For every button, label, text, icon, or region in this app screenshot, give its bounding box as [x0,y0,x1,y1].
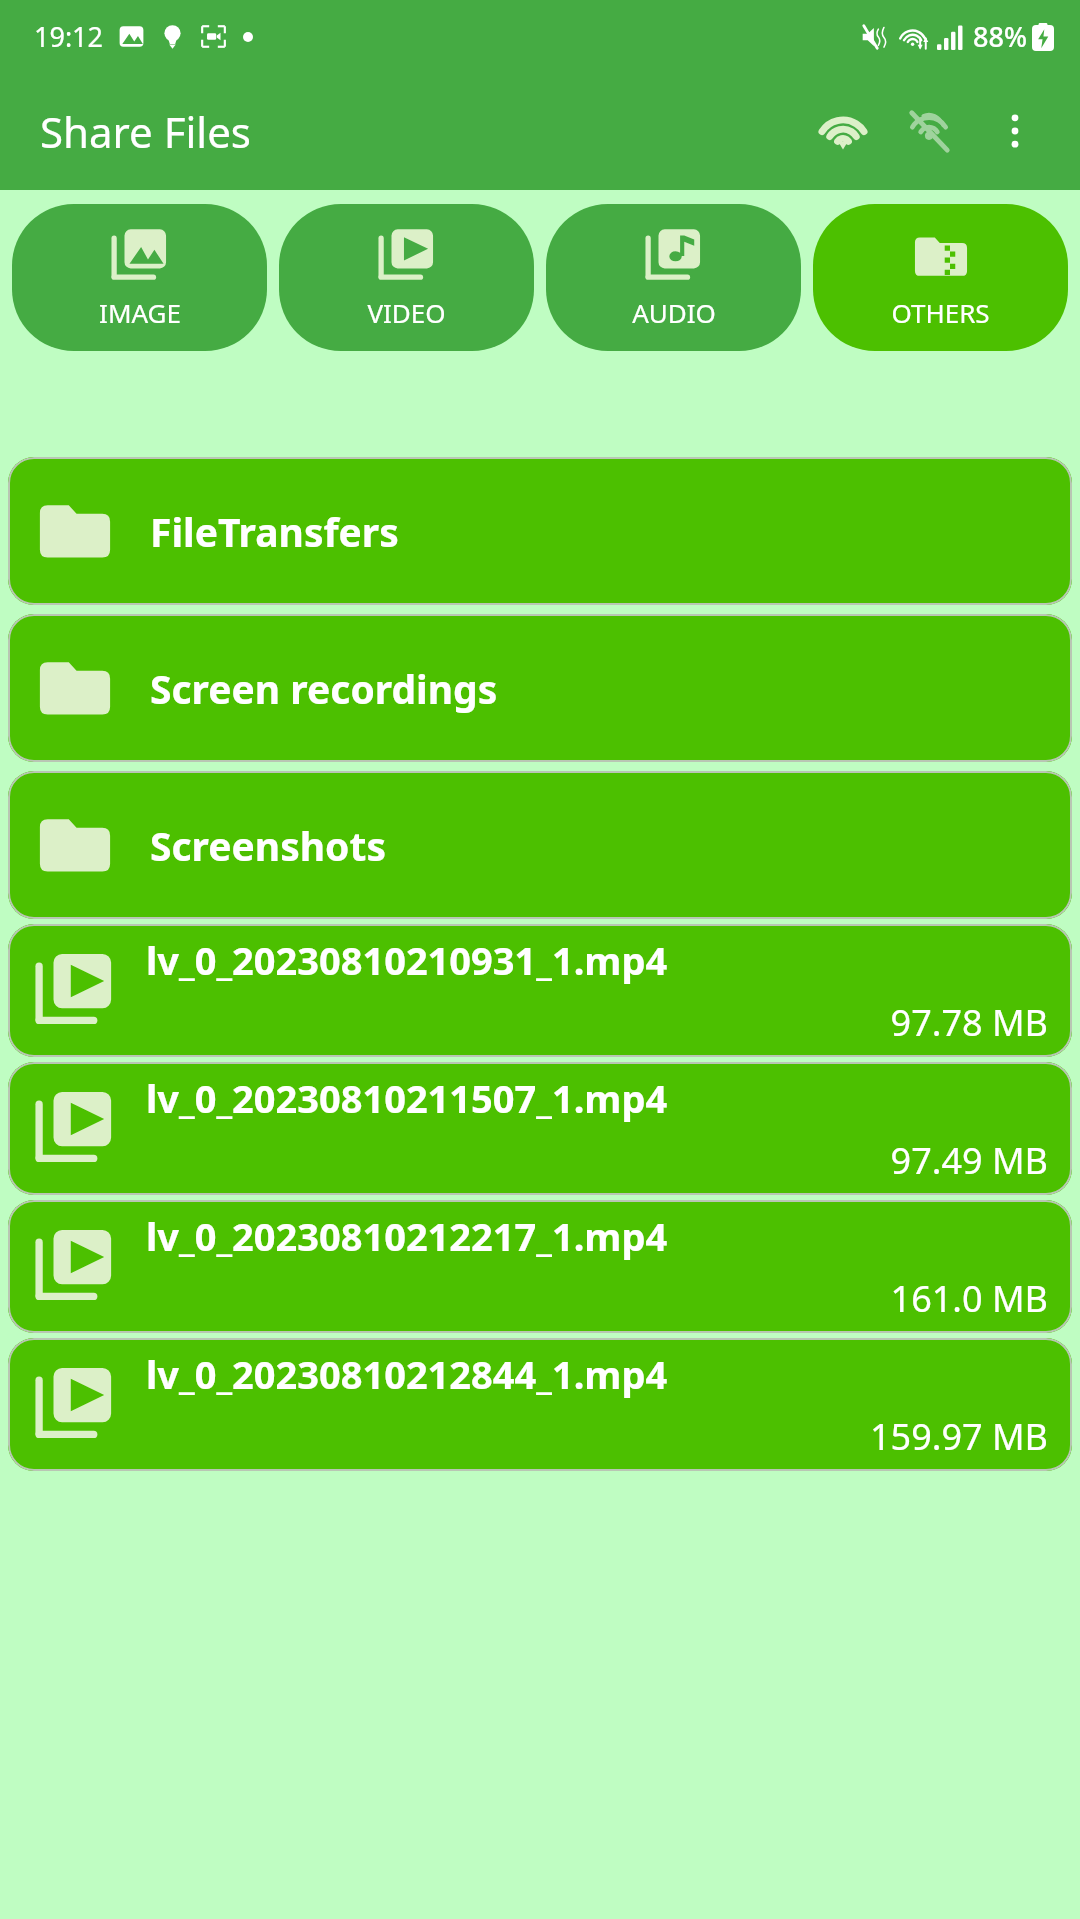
staticText: Screen recordings [150,662,498,715]
staticText: 19:12 [34,18,104,55]
button[interactable]: lv_0_20230810211507_1.mp4 [8,1062,1072,1195]
staticText: FileTransfers [150,505,399,558]
button[interactable]: OTHERS [813,204,1068,351]
staticText: OTHERS [891,295,990,330]
button[interactable]: More options [972,88,1058,174]
staticText: Screenshots [150,819,386,872]
staticText: 159.97 MB [146,1412,1048,1461]
staticText: lv_0_20230810211507_1.mp4 [146,1072,668,1124]
staticText: VIDEO [367,295,446,330]
button[interactable]: Screenshots [8,771,1072,919]
staticText: 97.78 MB [146,998,1048,1047]
button[interactable]: Screen recordings [8,614,1072,762]
staticText: lv_0_20230810212217_1.mp4 [146,1210,668,1262]
button[interactable]: lv_0_20230810212844_1.mp4 [8,1338,1072,1471]
staticText: AUDIO [632,295,716,330]
staticText: Share Files [40,103,251,160]
staticText: lv_0_20230810212844_1.mp4 [146,1348,668,1400]
button[interactable]: Wi-Fi [800,88,886,174]
staticText: 88% [973,18,1027,55]
button[interactable]: IMAGE [12,204,267,351]
button[interactable]: lv_0_20230810212217_1.mp4 [8,1200,1072,1333]
staticText: 97.49 MB [146,1136,1048,1185]
staticText: IMAGE [99,295,181,330]
button[interactable]: FileTransfers [8,457,1072,605]
staticText: 161.0 MB [146,1274,1048,1323]
button[interactable]: AUDIO [546,204,801,351]
staticText: lv_0_20230810210931_1.mp4 [146,934,668,986]
button[interactable]: Hotspot off [886,88,972,174]
button[interactable]: lv_0_20230810210931_1.mp4 [8,924,1072,1057]
button[interactable]: VIDEO [279,204,534,351]
